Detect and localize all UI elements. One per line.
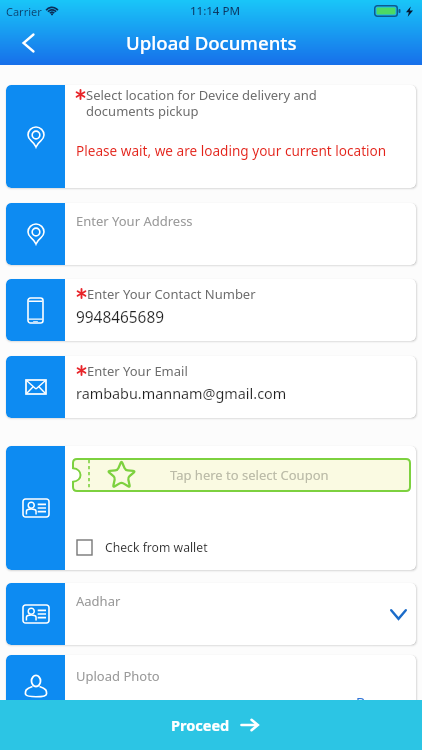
button[interactable]: Check from wallet xyxy=(77,539,208,556)
button[interactable]: Tap here to select Coupon xyxy=(72,458,411,492)
staticText: rambabu.mannam@gmail.com xyxy=(76,384,287,404)
staticText: Proceed xyxy=(171,715,230,735)
staticText: Upload Photo xyxy=(76,667,160,685)
button[interactable]: Enter Your Address xyxy=(6,203,416,265)
staticText: Browse xyxy=(356,693,405,712)
staticText: Please wait, we are loading your current… xyxy=(76,141,387,160)
staticText: Select location for Device delivery and … xyxy=(86,86,317,119)
staticText: 11:14 PM xyxy=(190,3,241,19)
button[interactable]: Back xyxy=(2,21,54,64)
button[interactable]: Upload Photo xyxy=(6,655,416,716)
other: Expand xyxy=(390,609,407,620)
staticText: Enter Your Email xyxy=(87,362,188,380)
staticText: Tap here to select Coupon xyxy=(170,466,329,484)
staticText: Enter Your Contact Number xyxy=(87,285,256,303)
button[interactable]: Aadhar xyxy=(6,583,416,645)
staticText: Check from wallet xyxy=(105,539,208,556)
staticText: Enter Your Address xyxy=(76,212,193,230)
button[interactable]: Enter Your Email xyxy=(6,356,416,418)
button[interactable]: Proceed xyxy=(0,700,422,750)
button[interactable]: Enter Your Contact Number xyxy=(6,279,416,341)
button[interactable]: Select location for Device delivery and … xyxy=(6,85,416,188)
staticText: Upload Documents xyxy=(126,30,297,55)
staticText: 9948465689 xyxy=(76,307,165,328)
staticText: Aadhar xyxy=(76,592,121,610)
button[interactable]: Tap here to select Coupon xyxy=(6,446,416,570)
staticText: Carrier xyxy=(6,4,42,19)
